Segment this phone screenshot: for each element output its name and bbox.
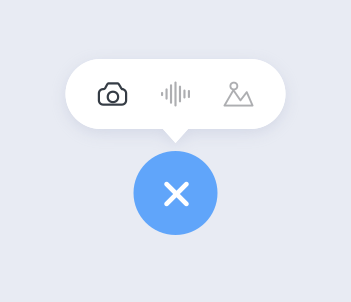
- button[interactable]: Close: [133, 151, 217, 235]
- button[interactable]: Photo library: [207, 59, 270, 129]
- button[interactable]: Camera: [81, 59, 144, 129]
- button[interactable]: Voice message: [144, 59, 207, 129]
